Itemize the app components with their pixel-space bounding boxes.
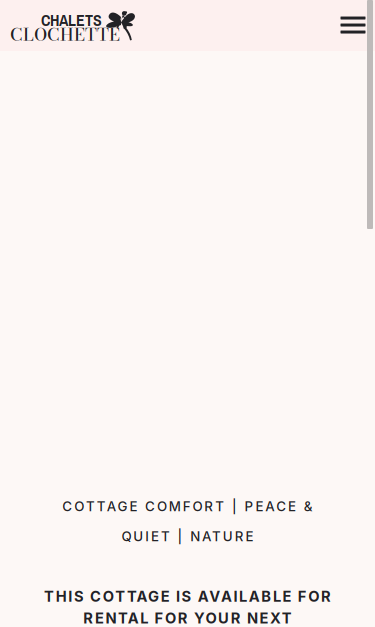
staticText: RENTAL FOR YOUR NEXT (83, 609, 292, 627)
staticText: CLOCHETTE (10, 21, 120, 48)
staticText: QUIET | NATURE (121, 528, 253, 544)
button[interactable]: CHALETS (0, 2, 136, 50)
staticText: THIS COTTAGE IS AVAILABLE FOR (44, 587, 331, 605)
staticText: CHALETS (41, 9, 102, 31)
button[interactable]: Menu (331, 3, 375, 47)
staticText: COTTAGE COMFORT | PEACE & (62, 498, 313, 514)
